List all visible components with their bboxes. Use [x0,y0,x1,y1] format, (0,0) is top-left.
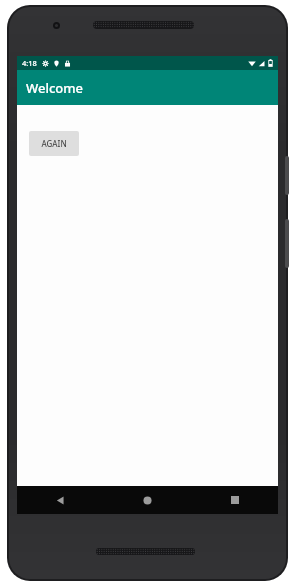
staticText: 4:18 [22,58,37,68]
button[interactable]: Recent apps [191,486,278,514]
button[interactable]: AGAIN [29,131,79,156]
staticText: AGAIN [41,138,67,149]
button[interactable]: Home [104,486,191,514]
staticText: Welcome [26,79,84,97]
button[interactable]: Back [17,486,104,514]
